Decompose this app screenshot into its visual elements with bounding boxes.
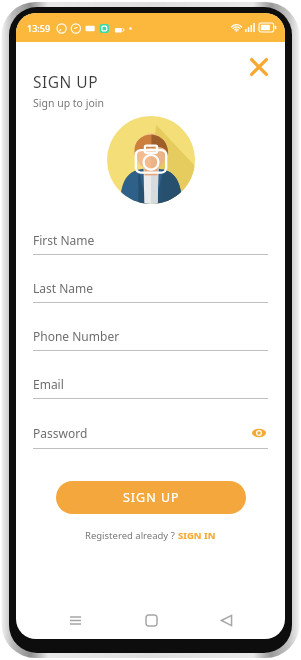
staticText: Email (33, 376, 64, 392)
button[interactable]: Home (134, 603, 168, 637)
staticText: Sign up to join (33, 96, 104, 110)
button[interactable]: Last Name (33, 280, 268, 303)
button[interactable]: Recents (58, 603, 92, 637)
staticText: SIGN UP (33, 71, 99, 92)
staticText: Registered already ? (85, 529, 178, 542)
staticText: 13:59 (27, 22, 51, 34)
button[interactable]: First Name (33, 232, 268, 255)
staticText: Password (33, 425, 88, 441)
button[interactable]: SIGN IN (178, 529, 216, 542)
button[interactable]: Email (33, 376, 268, 399)
button[interactable]: Back (209, 603, 243, 637)
staticText: First Name (33, 232, 95, 248)
staticText: SIGN UP (123, 489, 180, 506)
button[interactable]: Show password (250, 424, 268, 442)
button[interactable]: Password (33, 424, 268, 449)
button[interactable]: Close (244, 52, 274, 82)
button[interactable]: Phone Number (33, 328, 268, 351)
staticText: Phone Number (33, 328, 120, 344)
staticText: SIGN IN (178, 529, 216, 542)
button[interactable]: SIGN UP (56, 481, 246, 514)
staticText: Last Name (33, 280, 94, 296)
